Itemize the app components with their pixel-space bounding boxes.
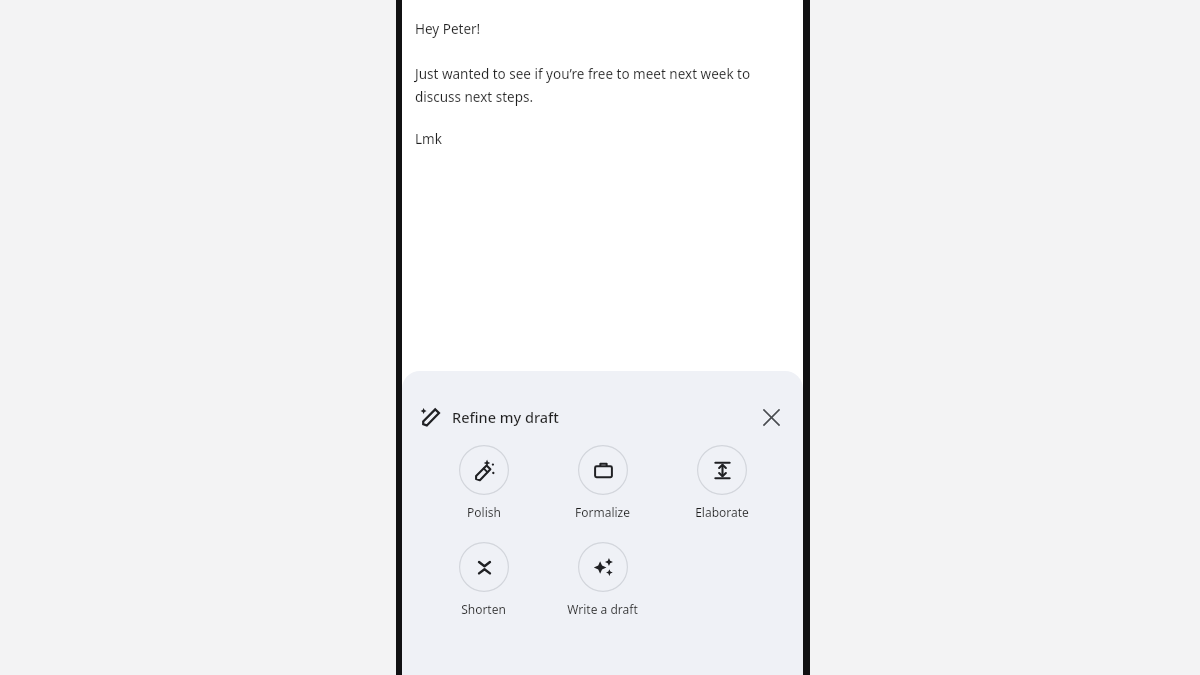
staticText: Formalize: [575, 504, 630, 520]
staticText: Refine my draft: [452, 407, 559, 427]
staticText: Elaborate: [695, 504, 749, 520]
staticText: Polish: [467, 504, 501, 520]
staticText: Hey Peter!: [415, 20, 481, 38]
staticText: Just wanted to see if you’re free to mee…: [415, 65, 787, 106]
other: Refine my draft: [418, 405, 442, 429]
button[interactable]: Close: [751, 397, 791, 437]
button[interactable]: Formalize: [543, 443, 662, 522]
button[interactable]: Polish: [424, 443, 543, 522]
staticText: Lmk: [415, 130, 442, 148]
button[interactable]: Elaborate: [662, 443, 781, 522]
staticText: Shorten: [461, 601, 506, 617]
button[interactable]: Write a draft: [543, 540, 662, 619]
button[interactable]: Shorten: [424, 540, 543, 619]
staticText: Write a draft: [567, 601, 638, 617]
